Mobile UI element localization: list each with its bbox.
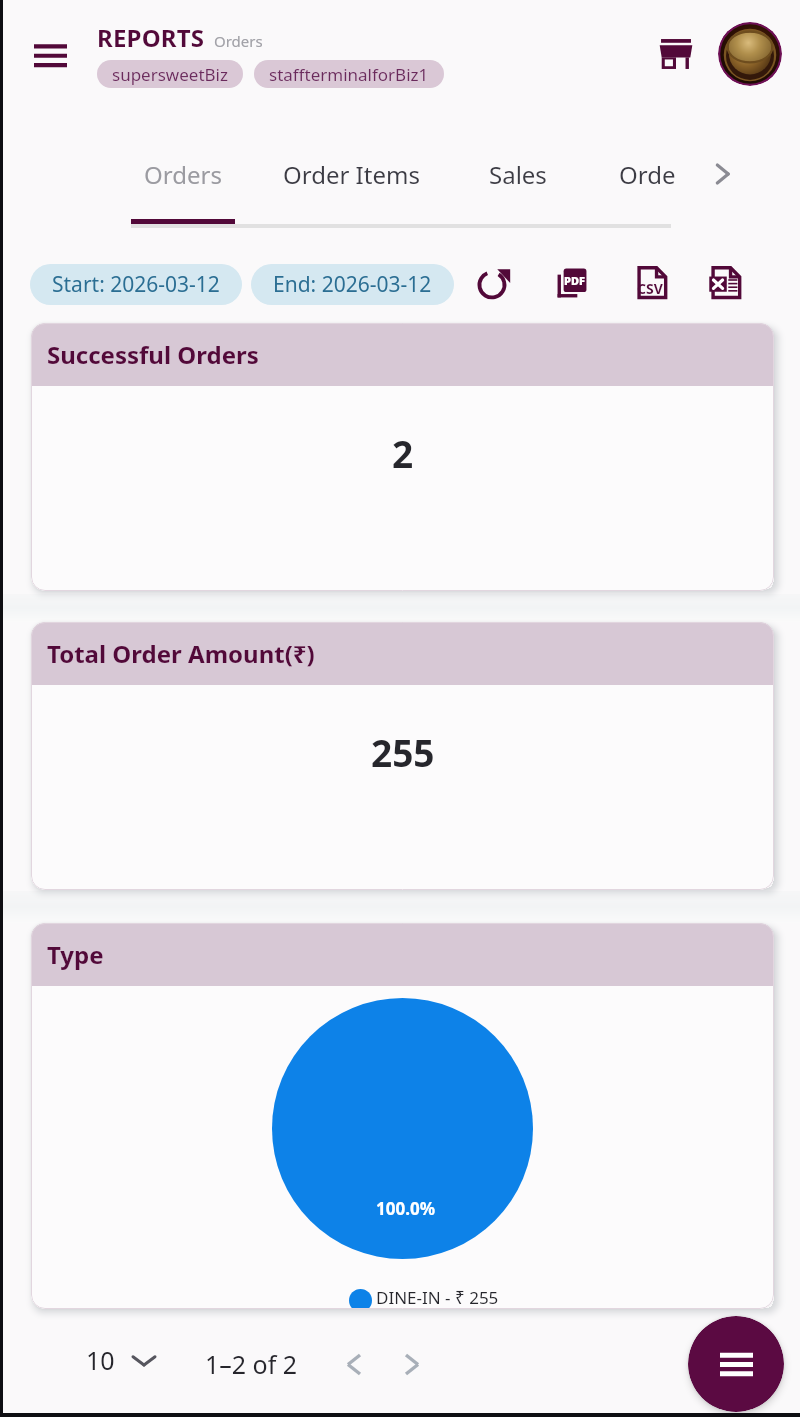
staticText: Successful Orders xyxy=(47,338,259,371)
button[interactable]: Order Items xyxy=(263,146,439,202)
button[interactable]: Export PDF xyxy=(548,259,596,307)
staticText: 1–2 of 2 xyxy=(205,1347,298,1381)
staticText: End: 2026-03-12 xyxy=(273,270,432,299)
staticText: Orde xyxy=(619,158,676,191)
button[interactable]: staffterminalforBiz1 xyxy=(254,60,444,88)
button[interactable]: Store xyxy=(648,26,704,82)
button[interactable]: More tabs xyxy=(698,150,746,198)
button[interactable]: Export CSV xyxy=(628,259,676,307)
staticText: 255 xyxy=(371,727,435,777)
staticText: Order Items xyxy=(283,158,420,191)
button[interactable]: Menu xyxy=(688,1316,784,1412)
staticText: 100.0% xyxy=(376,1197,436,1220)
button[interactable]: supersweetBiz xyxy=(97,60,243,88)
button[interactable]: Previous page xyxy=(330,1340,378,1388)
button[interactable]: Profile xyxy=(718,22,782,86)
staticText: CSV xyxy=(637,279,663,298)
button[interactable]: Start: 2026-03-12 xyxy=(30,264,242,305)
staticText: Orders xyxy=(144,158,222,191)
staticText: 10 xyxy=(86,1343,115,1377)
staticText: staffterminalforBiz1 xyxy=(269,63,429,86)
button[interactable]: Next page xyxy=(388,1340,436,1388)
staticText: REPORTS xyxy=(97,21,205,54)
staticText: DINE-IN - ₹ 255 xyxy=(376,1286,499,1309)
staticText: 2 xyxy=(392,428,414,478)
staticText: Orders xyxy=(214,31,263,51)
button[interactable]: End: 2026-03-12 xyxy=(251,264,454,305)
staticText: PDF xyxy=(564,273,585,288)
button[interactable]: 10 xyxy=(86,1334,155,1386)
button[interactable]: Orders xyxy=(131,146,235,202)
button[interactable]: Open navigation menu xyxy=(20,24,80,84)
staticText: supersweetBiz xyxy=(112,63,228,86)
button[interactable]: Orde xyxy=(619,146,701,202)
staticText: Type xyxy=(47,938,104,971)
staticText: Sales xyxy=(489,158,547,191)
staticText: Start: 2026-03-12 xyxy=(52,270,220,299)
button[interactable]: Sales xyxy=(462,146,574,202)
button[interactable]: Refresh xyxy=(471,259,519,307)
staticText: Total Order Amount(₹) xyxy=(47,637,315,670)
button[interactable]: Export Excel xyxy=(702,259,750,307)
